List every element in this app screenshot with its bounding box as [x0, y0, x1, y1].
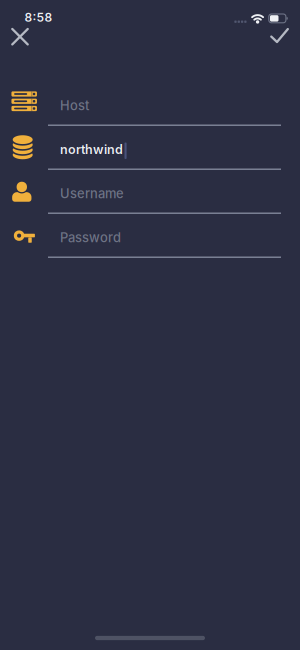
button[interactable]: Host	[0, 81, 300, 125]
button[interactable]: Password	[0, 213, 300, 257]
staticText: 8:58	[24, 10, 52, 24]
button[interactable]: Close	[3, 20, 37, 54]
staticText: Host	[60, 98, 89, 113]
button[interactable]: Save	[267, 21, 293, 51]
button[interactable]: northwind	[0, 125, 300, 169]
staticText: Password	[60, 230, 121, 245]
button[interactable]: Username	[0, 169, 300, 213]
staticText: northwind	[60, 142, 123, 157]
staticText: Username	[60, 186, 124, 201]
